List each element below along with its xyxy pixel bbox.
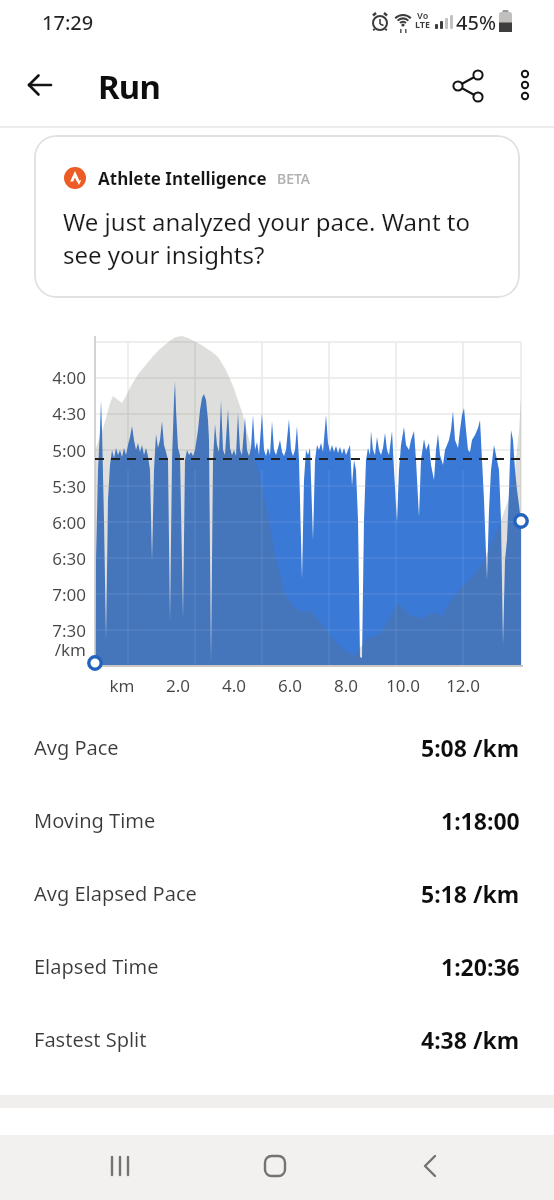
button[interactable] — [96, 1142, 144, 1190]
staticText: Run — [98, 64, 161, 109]
button[interactable] — [251, 1142, 299, 1190]
button[interactable]: Moving Time — [34, 784, 520, 857]
staticText: km — [92, 674, 152, 697]
staticText: Avg Pace — [34, 734, 119, 761]
staticText: Avg Elapsed Pace — [34, 880, 197, 907]
staticText: We just analyzed your pace. Want to see … — [63, 205, 470, 271]
staticText: Vo — [417, 9, 429, 21]
staticText: Fastest Split — [34, 1026, 147, 1053]
staticText: 8.0 — [316, 674, 376, 697]
staticText: Elapsed Time — [34, 953, 159, 980]
staticText: BETA — [277, 169, 311, 188]
staticText: 4:38 /km — [421, 1024, 520, 1055]
staticText: LTE — [415, 18, 431, 30]
button[interactable] — [18, 63, 62, 107]
staticText: 7:30 — [24, 619, 86, 642]
staticText: 17:29 — [42, 9, 94, 36]
staticText: 4.0 — [204, 674, 264, 697]
button[interactable] — [444, 62, 492, 110]
staticText: 1:20:36 — [441, 951, 520, 982]
staticText: 12.0 — [433, 674, 493, 697]
staticText: 5:30 — [24, 475, 86, 498]
staticText: 45% — [456, 9, 496, 36]
staticText: 4:00 — [24, 366, 86, 389]
button[interactable]: Fastest Split — [34, 1003, 520, 1076]
button[interactable]: Avg Pace — [34, 711, 520, 784]
staticText: /km — [24, 638, 86, 661]
staticText: Athlete Intelligence — [98, 167, 267, 190]
button[interactable]: Avg Elapsed Pace — [34, 857, 520, 930]
staticText: 6:00 — [24, 511, 86, 534]
button[interactable] — [504, 62, 546, 104]
button[interactable]: Elapsed Time — [34, 930, 520, 1003]
staticText: 2.0 — [148, 674, 208, 697]
staticText: Moving Time — [34, 807, 156, 834]
staticText: 7:00 — [24, 583, 86, 606]
staticText: 5:18 /km — [421, 878, 520, 909]
staticText: 5:08 /km — [421, 732, 520, 763]
staticText: 6:30 — [24, 547, 86, 570]
staticText: 10.0 — [373, 674, 433, 697]
button[interactable] — [406, 1142, 454, 1190]
staticText: 5:00 — [24, 439, 86, 462]
staticText: 4:30 — [24, 402, 86, 425]
button[interactable]: Athlete Intelligence — [34, 135, 520, 298]
staticText: 6.0 — [260, 674, 320, 697]
staticText: 1:18:00 — [441, 805, 520, 836]
